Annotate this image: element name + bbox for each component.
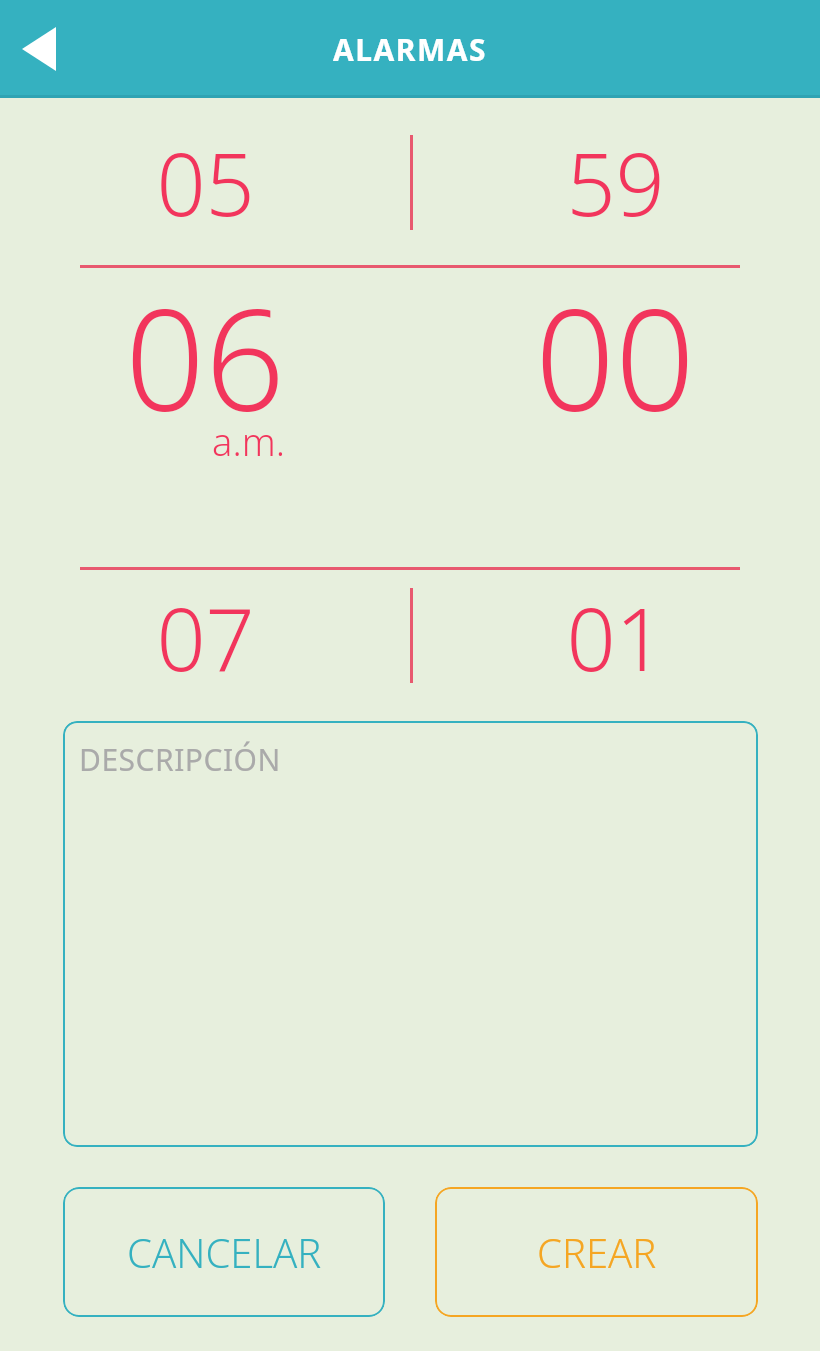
staticText: 05 bbox=[156, 124, 255, 241]
button[interactable]: 01 bbox=[410, 570, 820, 705]
button[interactable]: 06 bbox=[0, 268, 410, 468]
staticText: 00 bbox=[535, 261, 695, 452]
staticText: ALARMAS bbox=[333, 29, 488, 70]
button[interactable]: Back bbox=[8, 18, 70, 80]
button[interactable]: DESCRIPCIÓN bbox=[63, 721, 758, 1147]
button[interactable]: 59 bbox=[410, 98, 820, 267]
staticText: 59 bbox=[566, 124, 665, 241]
button[interactable]: CANCELAR bbox=[63, 1187, 385, 1317]
staticText: a.m. bbox=[212, 415, 285, 463]
staticText: 07 bbox=[156, 579, 255, 696]
staticText: 06 bbox=[125, 261, 285, 452]
button[interactable]: 07 bbox=[0, 570, 410, 705]
button[interactable]: a.m. bbox=[196, 415, 301, 463]
staticText: DESCRIPCIÓN bbox=[79, 739, 281, 780]
button[interactable]: 05 bbox=[0, 98, 410, 267]
staticText: 01 bbox=[566, 579, 665, 696]
staticText: CREAR bbox=[537, 1225, 657, 1279]
staticText: CANCELAR bbox=[127, 1225, 322, 1279]
button[interactable]: CREAR bbox=[435, 1187, 758, 1317]
button[interactable]: 00 bbox=[410, 268, 820, 468]
